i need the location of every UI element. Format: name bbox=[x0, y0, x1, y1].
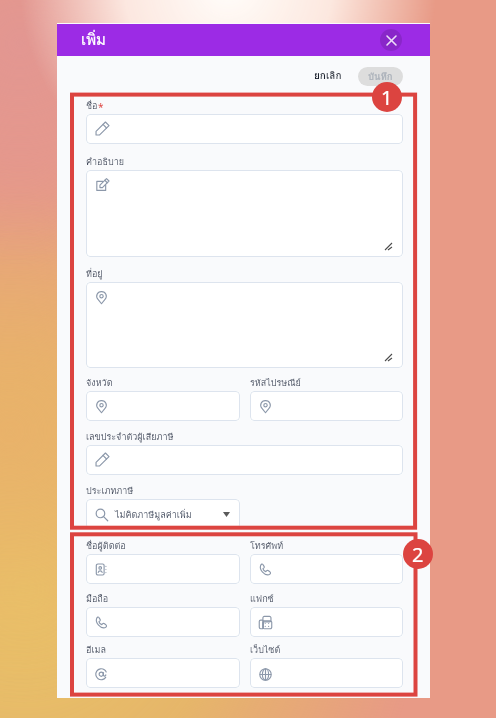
staticText: ชื่อผู้ติดต่อ bbox=[86, 539, 126, 553]
button[interactable] bbox=[250, 607, 403, 637]
button[interactable]: Step 2 bbox=[403, 539, 433, 569]
staticText: เลขประจำตัวผู้เสียภาษี bbox=[86, 430, 174, 444]
staticText: เว็บไซต์ bbox=[250, 643, 281, 657]
staticText: เพิ่ม bbox=[81, 28, 106, 52]
button[interactable]: Step 1 bbox=[372, 82, 402, 112]
button[interactable]: ยกเลิก bbox=[312, 68, 344, 84]
staticText: ที่อยู่ bbox=[86, 267, 103, 281]
staticText: 2 bbox=[412, 541, 424, 568]
button[interactable] bbox=[86, 170, 403, 257]
staticText: ชื่อ bbox=[86, 99, 98, 113]
staticText: โทรศัพท์ bbox=[250, 539, 284, 553]
staticText: แฟกซ์ bbox=[250, 592, 274, 606]
button[interactable] bbox=[86, 658, 240, 688]
staticText: ประเภทภาษี bbox=[86, 484, 134, 498]
button[interactable] bbox=[86, 607, 240, 637]
staticText: บันทึก bbox=[368, 69, 393, 84]
staticText: ยกเลิก bbox=[314, 68, 342, 84]
staticText: 1 bbox=[381, 84, 393, 111]
staticText: ไม่คิดภาษีมูลค่าเพิ่ม bbox=[115, 508, 192, 522]
staticText: รหัสไปรษณีย์ bbox=[250, 376, 301, 390]
staticText: จังหวัด bbox=[86, 376, 113, 390]
staticText: อีเมล bbox=[86, 643, 106, 657]
staticText: คำอธิบาย bbox=[86, 155, 125, 169]
button[interactable] bbox=[250, 391, 403, 421]
button[interactable]: บันทึก bbox=[358, 67, 403, 86]
button[interactable] bbox=[250, 554, 403, 584]
staticText: * bbox=[98, 100, 104, 114]
staticText: มือถือ bbox=[86, 592, 109, 606]
button[interactable]: ไม่คิดภาษีมูลค่าเพิ่ม bbox=[86, 499, 240, 529]
button[interactable] bbox=[86, 282, 403, 368]
button[interactable] bbox=[86, 391, 240, 421]
button[interactable] bbox=[250, 658, 403, 688]
button[interactable] bbox=[86, 114, 403, 144]
button[interactable] bbox=[86, 445, 403, 475]
button[interactable]: Close bbox=[380, 29, 402, 51]
button[interactable] bbox=[86, 554, 240, 584]
